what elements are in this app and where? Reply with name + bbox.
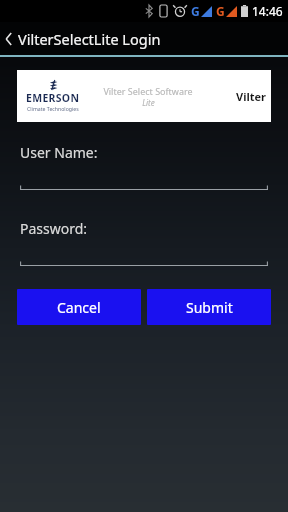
staticText: EMERSON xyxy=(26,91,80,105)
staticText: Lite xyxy=(142,97,155,108)
staticText: Password: xyxy=(20,219,88,238)
staticText: Submit xyxy=(186,298,233,317)
button[interactable]: User Name: xyxy=(20,184,268,194)
button[interactable]: Back xyxy=(0,22,288,55)
staticText: User Name: xyxy=(20,143,98,162)
staticText: Climate Technologies xyxy=(27,105,79,112)
button[interactable]: Cancel xyxy=(17,289,141,325)
staticText: Vilter Select Software xyxy=(103,85,193,97)
staticText: G xyxy=(216,3,225,19)
staticText: VilterSelectLite Login xyxy=(18,29,161,49)
button[interactable]: Submit xyxy=(147,289,271,325)
staticText: Cancel xyxy=(57,298,101,317)
button[interactable]: Password: xyxy=(20,260,268,270)
staticText: Vilter xyxy=(236,89,266,104)
other: Back xyxy=(4,31,14,47)
staticText: G xyxy=(191,3,200,19)
staticText: 14:46 xyxy=(252,3,283,19)
